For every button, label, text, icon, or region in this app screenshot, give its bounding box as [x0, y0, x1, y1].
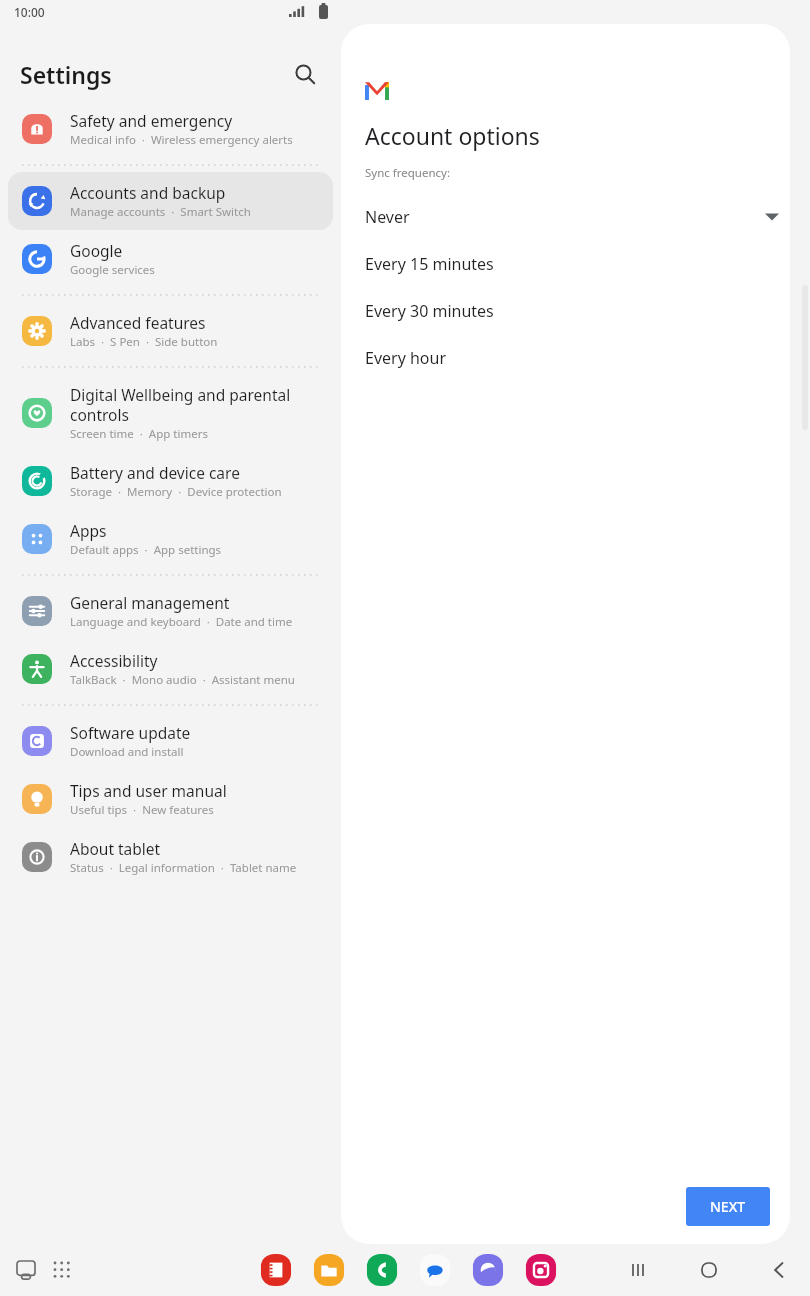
staticText: Language and keyboard · Date and time: [70, 614, 293, 630]
staticText: Advanced features: [70, 312, 206, 333]
button[interactable]: All apps: [44, 1252, 80, 1288]
button[interactable]: Every 30 minutes: [353, 287, 748, 334]
staticText: Account options: [365, 120, 540, 151]
staticText: Accessibility: [70, 650, 158, 671]
staticText: Google services: [70, 262, 155, 278]
staticText: Software update: [70, 722, 191, 743]
button[interactable]: Home: [692, 1253, 726, 1287]
staticText: Every hour: [365, 347, 447, 369]
button[interactable]: Advanced features: [8, 302, 333, 360]
staticText: Default apps · App settings: [70, 542, 222, 558]
staticText: Battery and device care: [70, 462, 240, 483]
button[interactable]: About tablet: [8, 828, 333, 886]
staticText: Settings: [20, 59, 112, 90]
staticText: 10:00: [14, 4, 45, 20]
button[interactable]: files: [312, 1253, 346, 1287]
staticText: Labs · S Pen · Side button: [70, 334, 218, 350]
button[interactable]: notes: [259, 1253, 293, 1287]
button[interactable]: Recent apps: [8, 1252, 44, 1288]
button[interactable]: NEXT: [686, 1187, 770, 1226]
staticText: Accounts and backup: [70, 182, 226, 203]
button[interactable]: Software update: [8, 712, 333, 770]
button[interactable]: Accounts and backup: [8, 172, 333, 230]
staticText: Safety and emergency: [70, 110, 233, 131]
staticText: Never: [365, 206, 410, 228]
button[interactable]: Recents: [622, 1253, 656, 1287]
staticText: Manage accounts · Smart Switch: [70, 204, 251, 220]
staticText: TalkBack · Mono audio · Assistant menu: [70, 672, 295, 688]
staticText: Apps: [70, 520, 107, 541]
button[interactable]: camera: [524, 1253, 558, 1287]
button[interactable]: Back: [762, 1253, 796, 1287]
button[interactable]: Tips and user manual: [8, 770, 333, 828]
staticText: Every 30 minutes: [365, 300, 494, 322]
button[interactable]: Never: [353, 193, 748, 240]
staticText: Every 15 minutes: [365, 253, 494, 275]
staticText: NEXT: [710, 1197, 746, 1216]
button[interactable]: Every 15 minutes: [353, 240, 748, 287]
button[interactable]: Battery and device care: [8, 452, 333, 510]
staticText: About tablet: [70, 838, 161, 859]
button[interactable]: Search: [285, 54, 325, 94]
staticText: Google: [70, 240, 123, 261]
staticText: Status · Legal information · Tablet name: [70, 860, 297, 876]
staticText: Useful tips · New features: [70, 802, 214, 818]
button[interactable]: Apps: [8, 510, 333, 568]
button[interactable]: Accessibility: [8, 640, 333, 698]
staticText: Storage · Memory · Device protection: [70, 484, 282, 500]
staticText: Tips and user manual: [70, 780, 227, 801]
staticText: Screen time · App timers: [70, 426, 208, 442]
button[interactable]: phone: [365, 1253, 399, 1287]
button[interactable]: Every hour: [353, 334, 748, 381]
button[interactable]: internet: [471, 1253, 505, 1287]
staticText: Sync frequency:: [365, 165, 450, 181]
button[interactable]: messages: [418, 1253, 452, 1287]
button[interactable]: General management: [8, 582, 333, 640]
staticText: Medical info · Wireless emergency alerts: [70, 132, 293, 148]
button[interactable]: Digital Wellbeing and parental controls: [8, 374, 333, 452]
button[interactable]: Google: [8, 230, 333, 288]
staticText: Download and install: [70, 744, 184, 760]
staticText: General management: [70, 592, 230, 613]
staticText: Digital Wellbeing and parental controls: [70, 384, 323, 425]
button[interactable]: Safety and emergency: [8, 100, 333, 158]
